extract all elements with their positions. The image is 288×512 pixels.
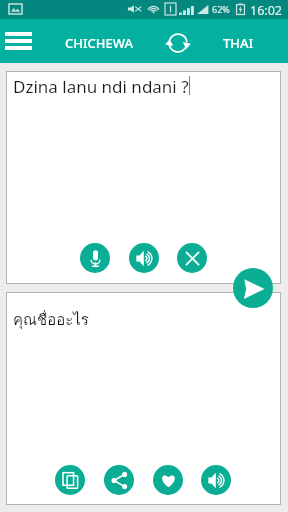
button[interactable]: Voice input xyxy=(80,243,110,273)
button[interactable]: Translate xyxy=(233,268,273,308)
button[interactable]: CHICHEWA xyxy=(57,21,141,65)
staticText: THAI xyxy=(223,34,254,52)
button[interactable]: Copy xyxy=(55,465,85,495)
staticText: 16:02 xyxy=(250,2,282,19)
button[interactable]: Speak source xyxy=(129,243,159,273)
staticText: Dzina lanu ndi ndani ? xyxy=(13,75,189,98)
button[interactable]: Dzina lanu ndi ndani ? xyxy=(6,71,281,284)
button[interactable]: Favorite xyxy=(153,465,183,495)
staticText: CHICHEWA xyxy=(65,34,134,52)
button[interactable]: คุณชื่ออะไร xyxy=(6,292,281,505)
button[interactable]: Swap languages xyxy=(165,30,191,56)
button[interactable]: Clear text xyxy=(177,243,207,273)
button[interactable]: Speak translation xyxy=(201,465,231,495)
staticText: คุณชื่ออะไร xyxy=(13,308,89,332)
staticText: 62% xyxy=(212,3,230,15)
button[interactable]: THAI xyxy=(206,21,270,65)
button[interactable]: Share xyxy=(104,465,134,495)
button[interactable]: Menu xyxy=(4,27,32,55)
